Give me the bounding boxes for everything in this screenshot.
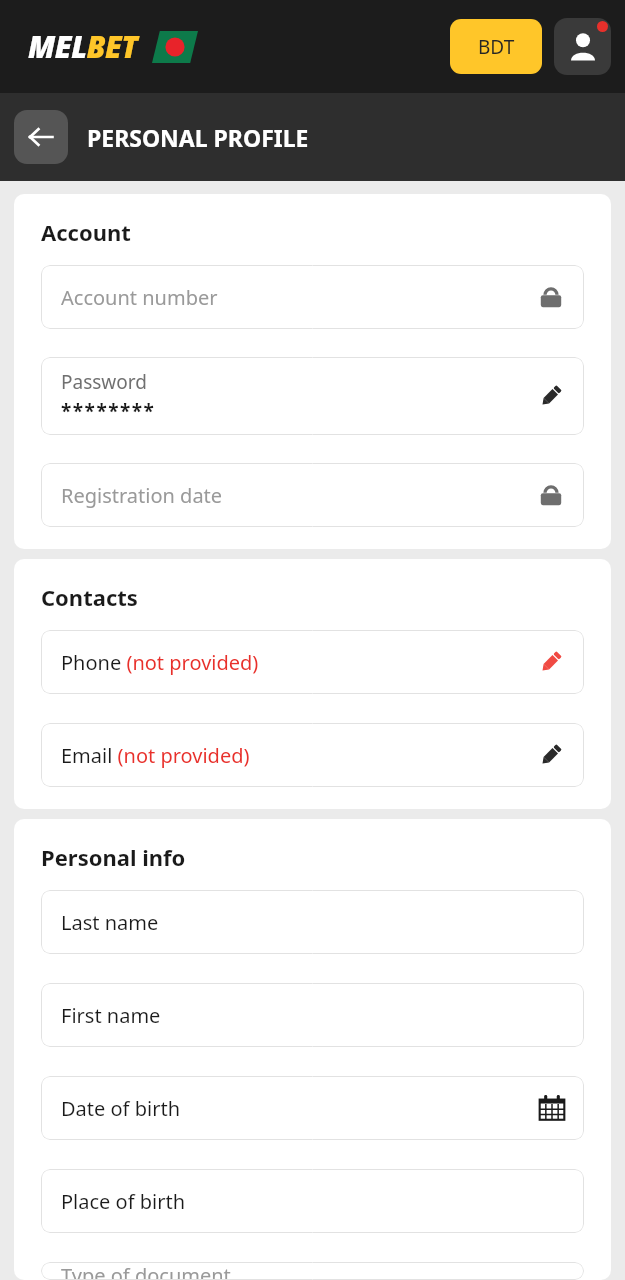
button[interactable]: Type of document [41,1262,584,1280]
staticText: Type of document [61,1262,231,1280]
button[interactable]: Registration date [41,463,584,527]
button[interactable]: Back [14,110,68,164]
button[interactable]: Account number [41,265,584,329]
staticText: Email (not provided) [61,742,250,769]
other: Locked [536,282,566,312]
staticText: Place of birth [61,1188,186,1215]
staticText: Last name [61,909,159,936]
staticText: Password [61,369,147,395]
button[interactable]: Last name [41,890,584,954]
staticText: PERSONAL PROFILE [87,122,309,153]
staticText: BDT [478,34,515,60]
other: Pick date [538,1094,566,1122]
button[interactable]: Password [41,357,584,435]
button[interactable]: Phone (not provided) [41,630,584,694]
button[interactable]: Date of birth [41,1076,584,1140]
button[interactable]: Email (not provided) [41,723,584,787]
staticText: MELBET [28,26,138,67]
staticText: Date of birth [61,1095,180,1122]
button[interactable]: Profile [554,18,611,75]
staticText: First name [61,1002,161,1029]
staticText: Contacts [41,582,138,612]
staticText: Registration date [61,482,223,509]
other: Edit [536,381,566,411]
button[interactable]: First name [41,983,584,1047]
staticText: Account number [61,284,218,311]
other: Locked [536,480,566,510]
staticText: Account [41,217,131,247]
button[interactable]: BDT [450,19,542,74]
staticText: Personal info [41,842,186,872]
staticText: Phone (not provided) [61,649,259,676]
staticText: ******** [61,398,156,424]
button[interactable]: Place of birth [41,1169,584,1233]
other: Edit [536,647,566,677]
other: Edit [536,740,566,770]
